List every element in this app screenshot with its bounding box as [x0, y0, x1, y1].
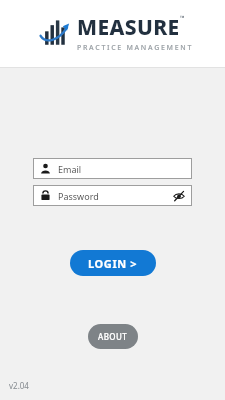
staticText: v2.04 [9, 380, 29, 391]
staticText: PRACTICE MANAGEMENT [77, 43, 194, 53]
button[interactable]: Show password [172, 189, 185, 202]
staticText: Email [58, 163, 185, 175]
staticText: Password [58, 190, 172, 202]
button[interactable]: Password [33, 185, 192, 206]
button[interactable]: LOGIN > [70, 250, 156, 276]
other: Measure logo [40, 19, 70, 47]
staticText: ABOUT [98, 331, 128, 342]
staticText: LOGIN > [88, 256, 138, 271]
staticText: MEASURE [77, 13, 180, 42]
button[interactable]: Email [33, 158, 192, 179]
button[interactable]: ABOUT [88, 324, 138, 349]
staticText: ™ [180, 14, 185, 22]
